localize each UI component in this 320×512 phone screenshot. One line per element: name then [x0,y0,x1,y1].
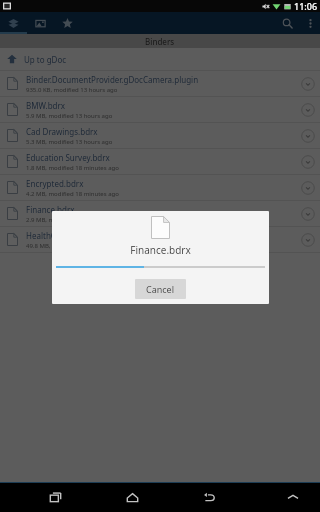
button[interactable]: More options [300,12,320,34]
button[interactable]: Actions for BMW.bdrx [296,98,320,122]
button[interactable]: Binder.DocumentProvider.gDocCamera.plugi… [0,71,320,96]
staticText: 5.9 MB, modified 13 hours ago [26,112,113,120]
staticText: 5.3 MB, modified 13 hours ago [26,138,113,146]
staticText: Encrypted.bdrx [26,178,84,189]
staticText: 11:06 [294,0,318,12]
button[interactable]: Actions for Cad Drawings.bdrx [296,124,320,148]
button[interactable]: Recent apps [40,482,70,512]
button[interactable]: Photos tab [27,12,54,34]
button[interactable]: Actions for Binder.DocumentProvider.gDoc… [296,72,320,96]
button[interactable]: Search [274,12,300,34]
staticText: Cancel [146,283,175,295]
button[interactable]: Back [194,482,224,512]
button[interactable]: Actions for HealthCare.bdrx [296,228,320,252]
staticText: Binder.DocumentProvider.gDocCamera.plugi… [26,74,199,85]
button[interactable]: Cancel [135,279,186,299]
staticText: Binders [145,36,175,47]
button[interactable]: Up to gDoc [0,48,320,70]
staticText: 4.2 MB, modified 18 minutes ago [26,190,119,198]
button[interactable]: Actions for Education Survey.bdrx [296,150,320,174]
button[interactable]: Cad Drawings.bdrx [0,123,320,148]
staticText: Finance.bdrx [26,204,75,215]
button[interactable]: Binders tab [0,12,27,34]
staticText: 1.8 MB, modified 18 minutes ago [26,164,119,172]
staticText: 49.8 MB, modified 18 minutes ago [26,242,123,250]
staticText: Finance.bdrx [130,243,191,257]
button[interactable]: Education Survey.bdrx [0,149,320,174]
staticText: BMW.bdrx [26,100,66,111]
button[interactable]: Encrypted.bdrx [0,175,320,200]
staticText: HealthCare.bdrx [26,230,88,241]
staticText: Education Survey.bdrx [26,152,110,163]
button[interactable]: Show menu [278,482,308,512]
button[interactable]: Actions for Finance.bdrx [296,202,320,226]
button[interactable]: BMW.bdrx [0,97,320,122]
button[interactable]: Favorites tab [54,12,81,34]
button[interactable]: Finance.bdrx [0,201,320,226]
button[interactable]: Home [117,482,147,512]
staticText: Cad Drawings.bdrx [26,126,98,137]
button[interactable]: Actions for Encrypted.bdrx [296,176,320,200]
button[interactable]: HealthCare.bdrx [0,227,320,252]
staticText: 2.9 MB, modified 18 minutes ago [26,216,119,224]
staticText: Up to gDoc [24,54,67,65]
staticText: 935.0 KB, modified 13 hours ago [26,86,118,94]
